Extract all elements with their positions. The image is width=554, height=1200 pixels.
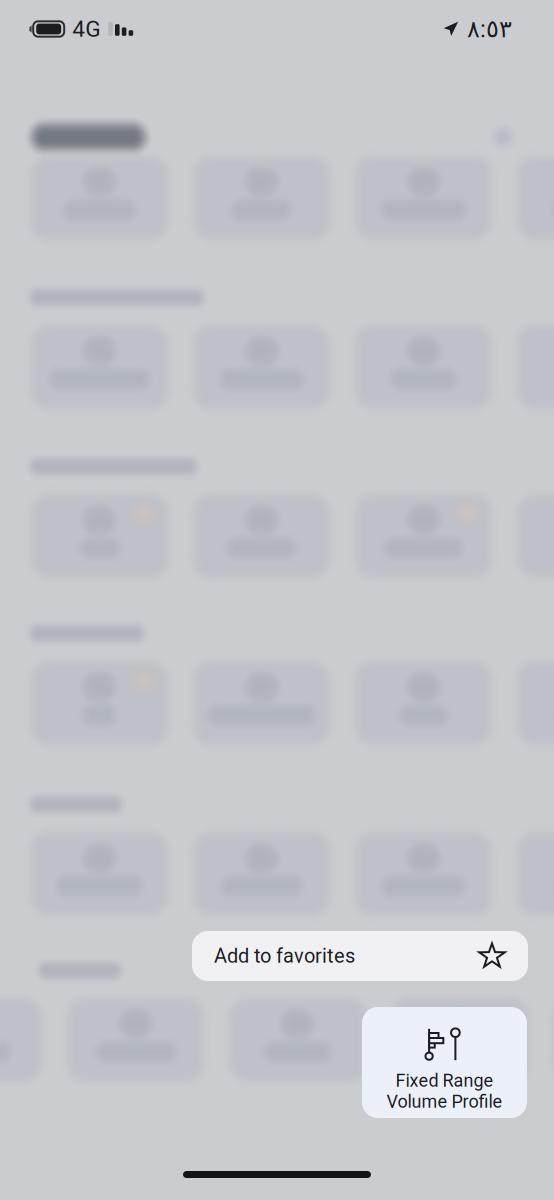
button[interactable]: Add to favorites — [192, 931, 528, 981]
staticText: 4G — [72, 16, 100, 42]
staticText: Add to favorites — [214, 944, 355, 968]
staticText: Volume Profile — [386, 1091, 502, 1112]
button[interactable]: Fixed Range — [362, 1007, 527, 1118]
staticText: ٨:٥٣ — [467, 15, 512, 43]
staticText: Fixed Range — [395, 1070, 493, 1091]
